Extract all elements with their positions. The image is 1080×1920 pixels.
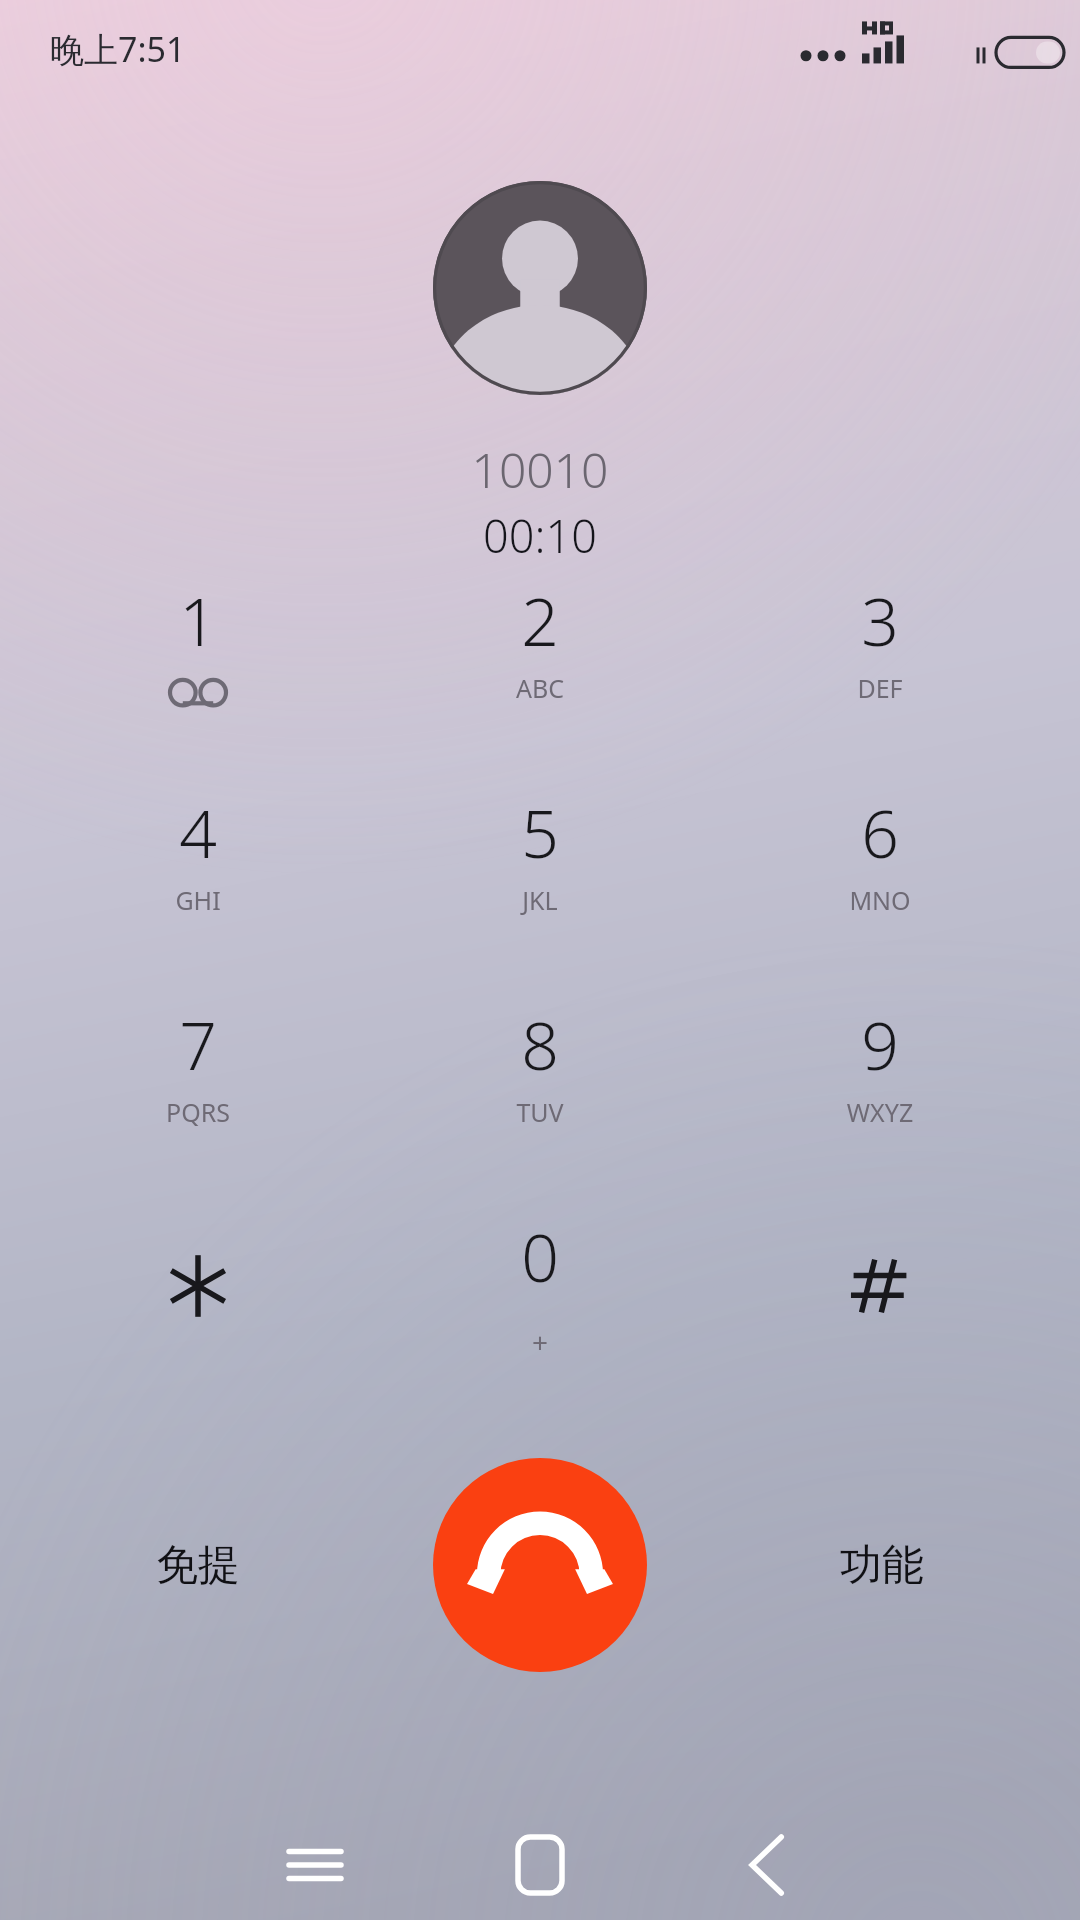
button[interactable]: 6: [730, 787, 1030, 997]
button[interactable]: 2: [390, 575, 690, 785]
button[interactable]: 0: [390, 1211, 690, 1421]
other: Contact photo: [433, 181, 647, 395]
button[interactable]: 5: [390, 787, 690, 997]
button[interactable]: 9: [730, 999, 1030, 1209]
button[interactable]: 3: [730, 575, 1030, 785]
button[interactable]: Back: [692, 1790, 842, 1920]
staticText: TUV: [390, 1095, 690, 1129]
staticText: +: [390, 1323, 690, 1361]
button[interactable]: 4: [48, 787, 348, 997]
staticText: 1: [48, 575, 348, 665]
staticText: 8: [390, 999, 690, 1089]
staticText: 晚上7:51: [50, 26, 186, 72]
staticText: DEF: [730, 671, 1030, 705]
staticText: 9: [730, 999, 1030, 1089]
staticText: 3: [730, 575, 1030, 665]
button[interactable]: Home: [465, 1790, 615, 1920]
button[interactable]: 7: [48, 999, 348, 1209]
staticText: 6: [730, 787, 1030, 877]
button[interactable]: Pound: [730, 1211, 1030, 1421]
staticText: 7: [48, 999, 348, 1089]
staticText: 免提: [70, 1539, 326, 1592]
staticText: WXYZ: [730, 1095, 1030, 1129]
staticText: 00:10: [0, 505, 1080, 566]
staticText: 功能: [754, 1539, 1010, 1592]
button[interactable]: Menu: [240, 1790, 390, 1920]
button[interactable]: 8: [390, 999, 690, 1209]
button[interactable]: 免提: [70, 1505, 326, 1625]
button[interactable]: Star: [48, 1211, 348, 1421]
button[interactable]: 1: [48, 575, 348, 785]
staticText: MNO: [730, 883, 1030, 917]
staticText: JKL: [390, 883, 690, 917]
button[interactable]: End call: [433, 1458, 647, 1672]
staticText: ABC: [390, 671, 690, 705]
staticText: GHI: [48, 883, 348, 917]
staticText: 0: [390, 1211, 690, 1301]
staticText: 4: [48, 787, 348, 877]
staticText: PQRS: [48, 1095, 348, 1129]
staticText: 2: [390, 575, 690, 665]
staticText: 10010: [0, 437, 1080, 502]
button[interactable]: 功能: [754, 1505, 1010, 1625]
staticText: 5: [390, 787, 690, 877]
